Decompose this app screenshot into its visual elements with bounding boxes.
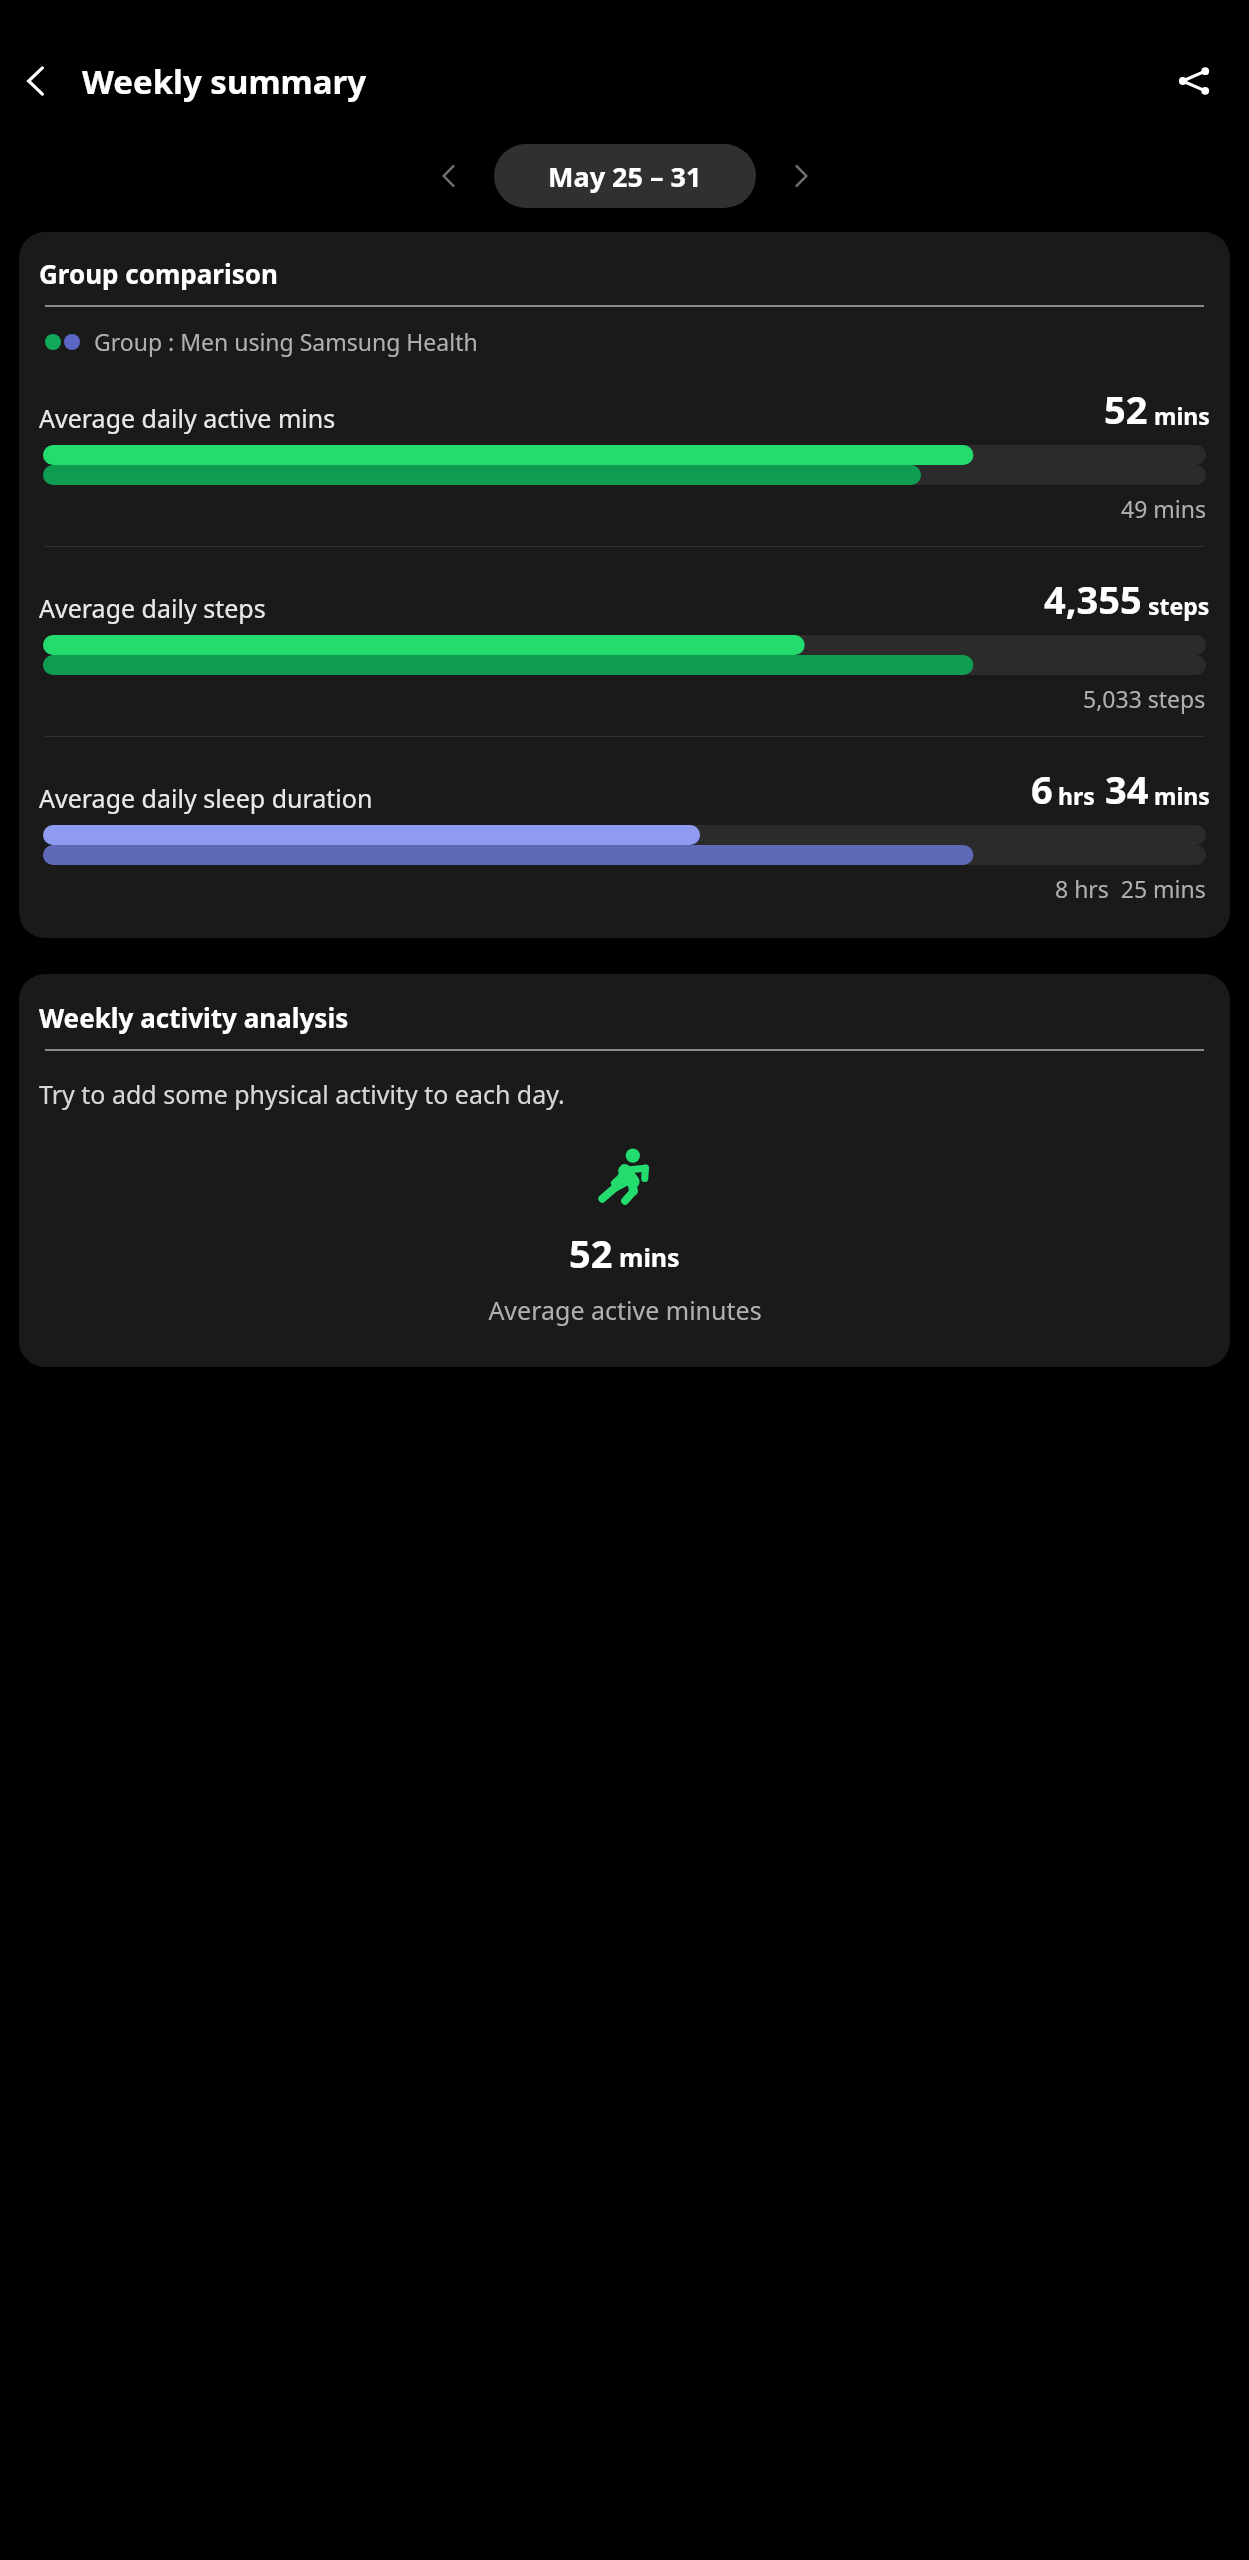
staticText: 4,355: [1044, 573, 1142, 625]
staticText: 8 hrs 25 mins: [1055, 873, 1206, 904]
staticText: Group comparison: [39, 256, 278, 291]
staticText: Weekly activity analysis: [39, 1000, 349, 1035]
staticText: Average daily sleep duration: [39, 781, 373, 815]
button[interactable]: May 25 – 31: [494, 144, 756, 208]
button[interactable]: Next week: [770, 145, 832, 207]
staticText: 52: [1104, 383, 1148, 435]
staticText: Try to add some physical activity to eac…: [39, 1077, 565, 1111]
staticText: steps: [1148, 590, 1210, 621]
staticText: 5,033 steps: [1083, 683, 1206, 714]
staticText: 6: [1031, 763, 1053, 815]
staticText: Average active minutes: [488, 1293, 762, 1327]
staticText: 49 mins: [1121, 493, 1206, 524]
staticText: Group : Men using Samsung Health: [94, 326, 478, 357]
staticText: May 25 – 31: [548, 158, 702, 195]
staticText: mins: [1154, 400, 1210, 431]
staticText: hrs: [1058, 780, 1095, 811]
button[interactable]: Previous week: [418, 145, 480, 207]
staticText: mins: [1154, 780, 1210, 811]
button[interactable]: Share: [1151, 38, 1237, 124]
button[interactable]: Back: [0, 44, 74, 118]
staticText: 34: [1105, 763, 1149, 815]
button[interactable]: Group comparison: [19, 232, 1230, 938]
button[interactable]: Weekly activity analysis: [19, 974, 1230, 1367]
staticText: Weekly summary: [82, 59, 367, 104]
staticText: mins: [619, 1240, 680, 1274]
staticText: 52: [569, 1227, 613, 1279]
staticText: Average daily steps: [39, 591, 266, 625]
staticText: Average daily active mins: [39, 401, 336, 435]
